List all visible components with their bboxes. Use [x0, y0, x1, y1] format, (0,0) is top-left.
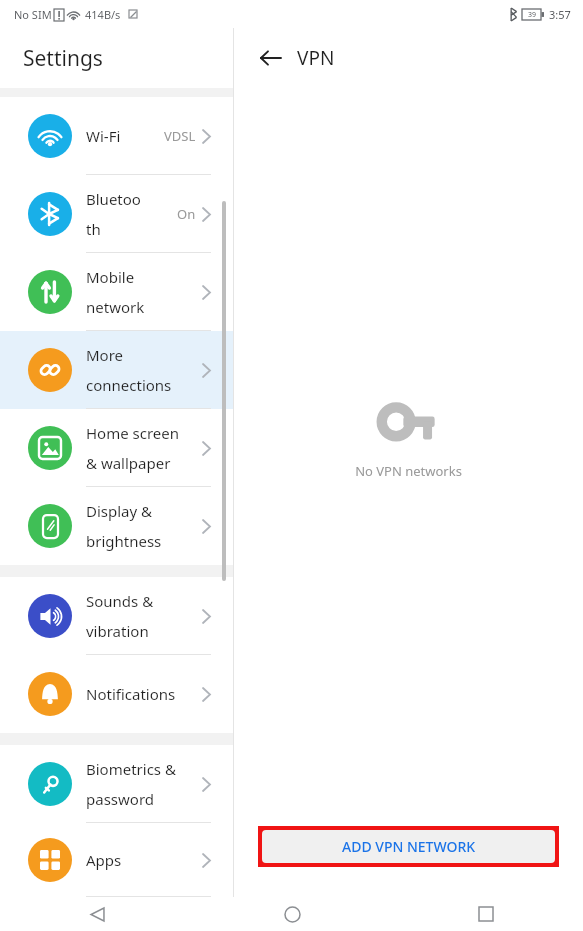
staticText: Mobile network — [86, 267, 202, 317]
button[interactable]: Back — [0, 897, 195, 931]
button[interactable]: Recent apps — [389, 897, 583, 931]
staticText: No SIM — [14, 7, 52, 22]
staticText: Bluetoo th — [86, 189, 177, 239]
button[interactable]: Home screen & wallpaper — [0, 409, 233, 487]
button[interactable]: Display & brightness — [0, 487, 233, 565]
staticText: VPN — [297, 45, 335, 71]
staticText: 414B/s — [85, 7, 121, 22]
staticText: Wi-Fi — [86, 126, 164, 146]
button[interactable]: More connections — [0, 331, 233, 409]
staticText: VDSL — [164, 127, 196, 145]
staticText: 3:57 — [549, 7, 571, 22]
button[interactable]: Mobile network — [0, 253, 233, 331]
staticText: No VPN networks — [355, 462, 462, 480]
button[interactable]: Biometrics & password — [0, 745, 233, 823]
button[interactable]: ADD VPN NETWORK — [262, 830, 555, 863]
staticText: Notifications — [86, 684, 202, 704]
staticText: ADD VPN NETWORK — [342, 837, 476, 856]
button[interactable]: Apps — [0, 823, 233, 897]
button[interactable]: Wi-Fi — [0, 97, 233, 175]
button[interactable]: Notifications — [0, 655, 233, 733]
staticText: Biometrics & password — [86, 759, 202, 809]
staticText: Display & brightness — [86, 501, 202, 551]
staticText: Sounds & vibration — [86, 591, 202, 641]
button[interactable]: Back — [248, 36, 292, 80]
staticText: Apps — [86, 850, 202, 870]
button[interactable]: Bluetoo th — [0, 175, 233, 253]
staticText: Home screen & wallpaper — [86, 423, 202, 473]
staticText: Settings — [23, 44, 103, 73]
staticText: More connections — [86, 345, 202, 395]
button[interactable]: Sounds & vibration — [0, 577, 233, 655]
staticText: On — [177, 205, 196, 223]
button[interactable]: Home — [195, 897, 389, 931]
staticText: 39 — [528, 10, 537, 20]
